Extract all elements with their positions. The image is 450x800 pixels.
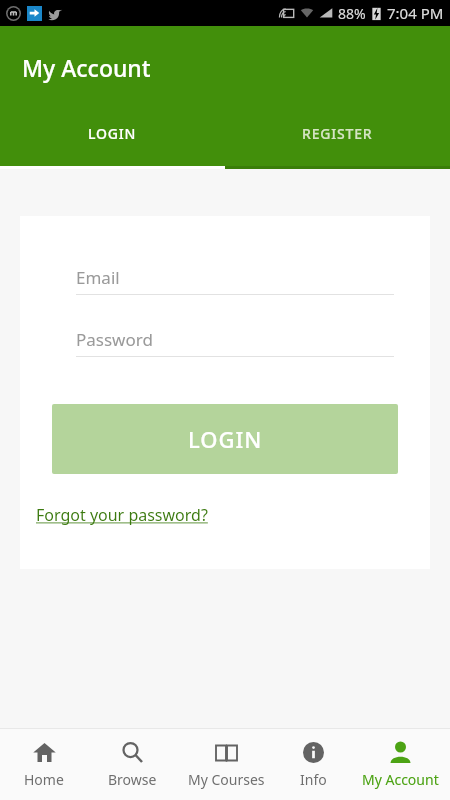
- staticText: My Courses: [188, 770, 265, 789]
- staticText: 88%: [338, 4, 366, 23]
- button[interactable]: Info: [276, 729, 350, 800]
- staticText: Forgot your password?: [36, 504, 208, 526]
- button[interactable]: LOGIN: [52, 404, 398, 474]
- button[interactable]: My Account: [350, 729, 450, 800]
- button[interactable]: LOGIN: [0, 108, 225, 169]
- staticText: Browse: [108, 770, 157, 789]
- staticText: My Account: [22, 52, 151, 83]
- button[interactable]: Password: [76, 322, 394, 357]
- staticText: 7:04 PM: [387, 3, 444, 23]
- staticText: REGISTER: [302, 124, 373, 143]
- staticText: Password: [76, 328, 153, 351]
- button[interactable]: Forgot your password?: [36, 500, 208, 530]
- staticText: Info: [300, 770, 327, 789]
- staticText: My Account: [362, 770, 439, 789]
- staticText: Email: [76, 266, 120, 289]
- button[interactable]: My Courses: [176, 729, 276, 800]
- button[interactable]: REGISTER: [225, 108, 450, 169]
- button[interactable]: Email: [76, 260, 394, 295]
- button[interactable]: Home: [0, 729, 88, 800]
- button[interactable]: Browse: [88, 729, 176, 800]
- staticText: LOGIN: [188, 424, 263, 454]
- staticText: LOGIN: [88, 124, 137, 143]
- staticText: Home: [24, 770, 64, 789]
